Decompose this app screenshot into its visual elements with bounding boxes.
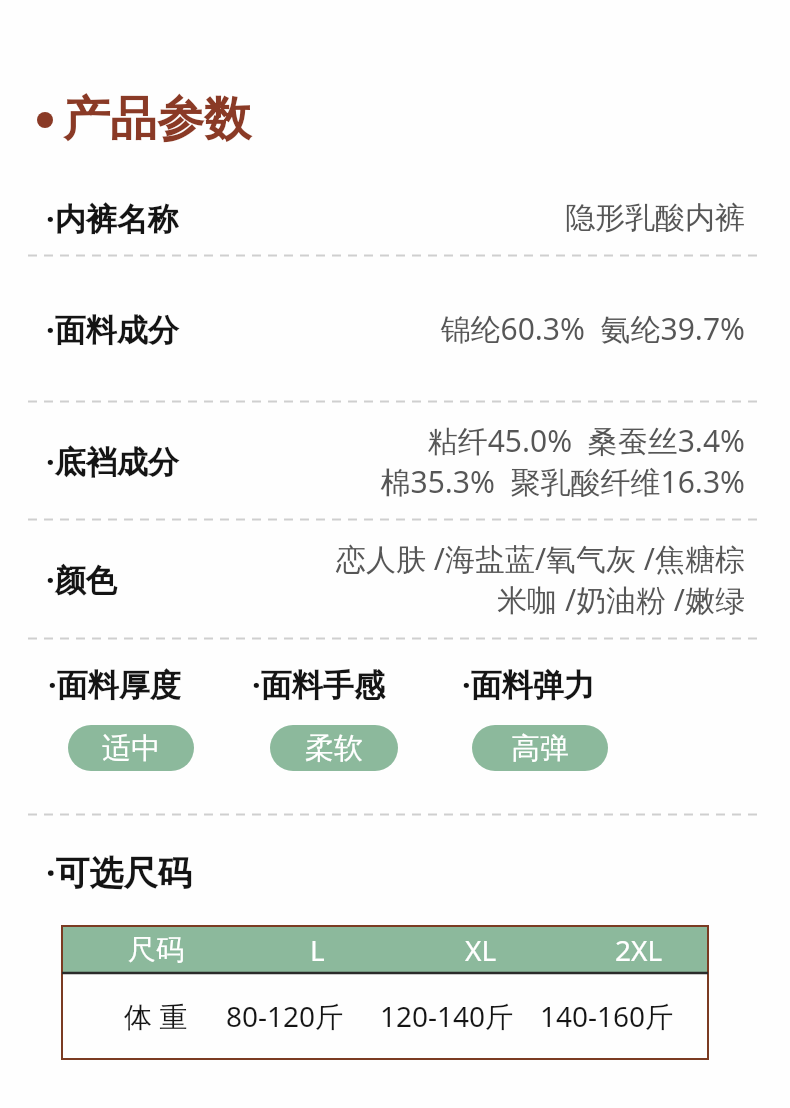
staticText: 柔软 xyxy=(305,730,363,767)
button[interactable]: 产品参数 xyxy=(0,90,790,149)
staticText: ·颜色 xyxy=(46,558,117,600)
staticText: 尺码 xyxy=(128,932,184,967)
staticText: 恋人肤 /海盐蓝/氧气灰 /焦糖棕 xyxy=(335,538,745,579)
button[interactable]: ·内裤名称 xyxy=(0,182,790,254)
button[interactable]: 柔软 xyxy=(270,725,398,771)
staticText: 锦纶60.3% 氨纶39.7% xyxy=(440,308,745,349)
button[interactable]: ·面料成分 xyxy=(0,257,790,400)
staticText: 粘纤45.0% 桑蚕丝3.4% xyxy=(427,420,745,461)
staticText: 2XL xyxy=(615,931,663,969)
staticText: 米咖 /奶油粉 /嫩绿 xyxy=(497,579,745,620)
staticText: ·内裤名称 xyxy=(46,197,179,239)
staticText: ·面料弹力 xyxy=(462,663,595,705)
staticText: ·面料手感 xyxy=(252,663,385,705)
staticText: 高弹 xyxy=(511,730,569,767)
button[interactable]: 尺码 xyxy=(62,926,708,1059)
staticText: 隐形乳酸内裤 xyxy=(565,199,745,237)
staticText: XL xyxy=(465,931,497,969)
staticText: ·底裆成分 xyxy=(46,440,179,482)
staticText: 棉35.3% 聚乳酸纤维16.3% xyxy=(380,461,745,502)
staticText: 体 重 xyxy=(124,997,188,1035)
button[interactable]: 适中 xyxy=(68,725,194,771)
staticText: 产品参数 xyxy=(63,90,251,149)
staticText: ·面料厚度 xyxy=(48,663,181,705)
staticText: 80-120斤 xyxy=(226,997,344,1035)
staticText: 120-140斤 xyxy=(380,997,514,1035)
staticText: 140-160斤 xyxy=(540,997,674,1035)
staticText: L xyxy=(310,931,325,969)
staticText: 适中 xyxy=(102,730,160,767)
button[interactable]: ·底裆成分 xyxy=(0,403,790,518)
staticText: ·可选尺码 xyxy=(46,849,192,895)
button[interactable]: ·颜色 xyxy=(0,521,790,637)
staticText: ·面料成分 xyxy=(46,308,179,350)
button[interactable]: 高弹 xyxy=(472,725,608,771)
